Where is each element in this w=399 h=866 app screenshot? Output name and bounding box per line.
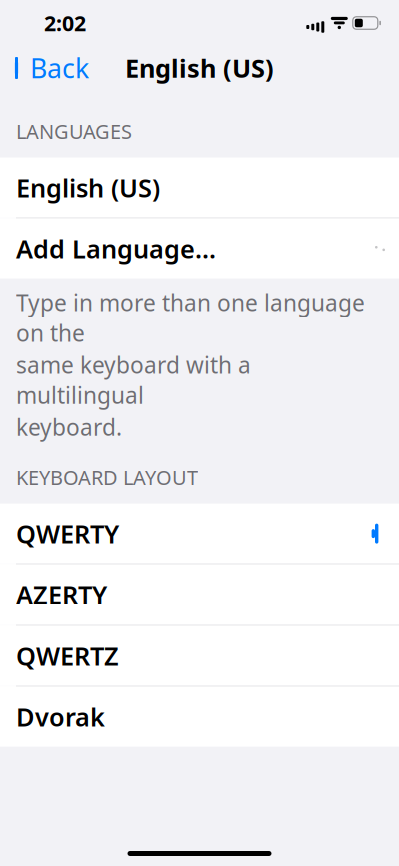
staticText: QWERTZ	[16, 639, 119, 672]
staticText: Dvorak	[16, 700, 105, 733]
staticText: KEYBOARD LAYOUT	[16, 464, 198, 491]
staticText: Back	[30, 50, 89, 86]
button[interactable]: Dvorak	[0, 687, 399, 747]
staticText: LANGUAGES	[16, 118, 132, 145]
staticText: Add Language...	[16, 232, 216, 265]
staticText: keyboard.	[16, 412, 122, 442]
staticText: AZERTY	[16, 578, 107, 611]
button[interactable]: Back	[0, 44, 89, 92]
button[interactable]: AZERTY	[0, 565, 399, 625]
staticText: English (US)	[125, 51, 274, 85]
button[interactable]: QWERTZ	[0, 626, 399, 686]
staticText: English (US)	[16, 171, 160, 204]
staticText: Type in more than one language on the	[16, 288, 365, 348]
button[interactable]: Add Language...	[0, 219, 399, 279]
staticText: 2:02	[44, 9, 86, 37]
staticText: QWERTY	[16, 517, 119, 550]
button[interactable]: QWERTY	[0, 504, 399, 564]
button[interactable]: English (US)	[0, 158, 399, 218]
staticText: same keyboard with a multilingual	[16, 350, 251, 410]
